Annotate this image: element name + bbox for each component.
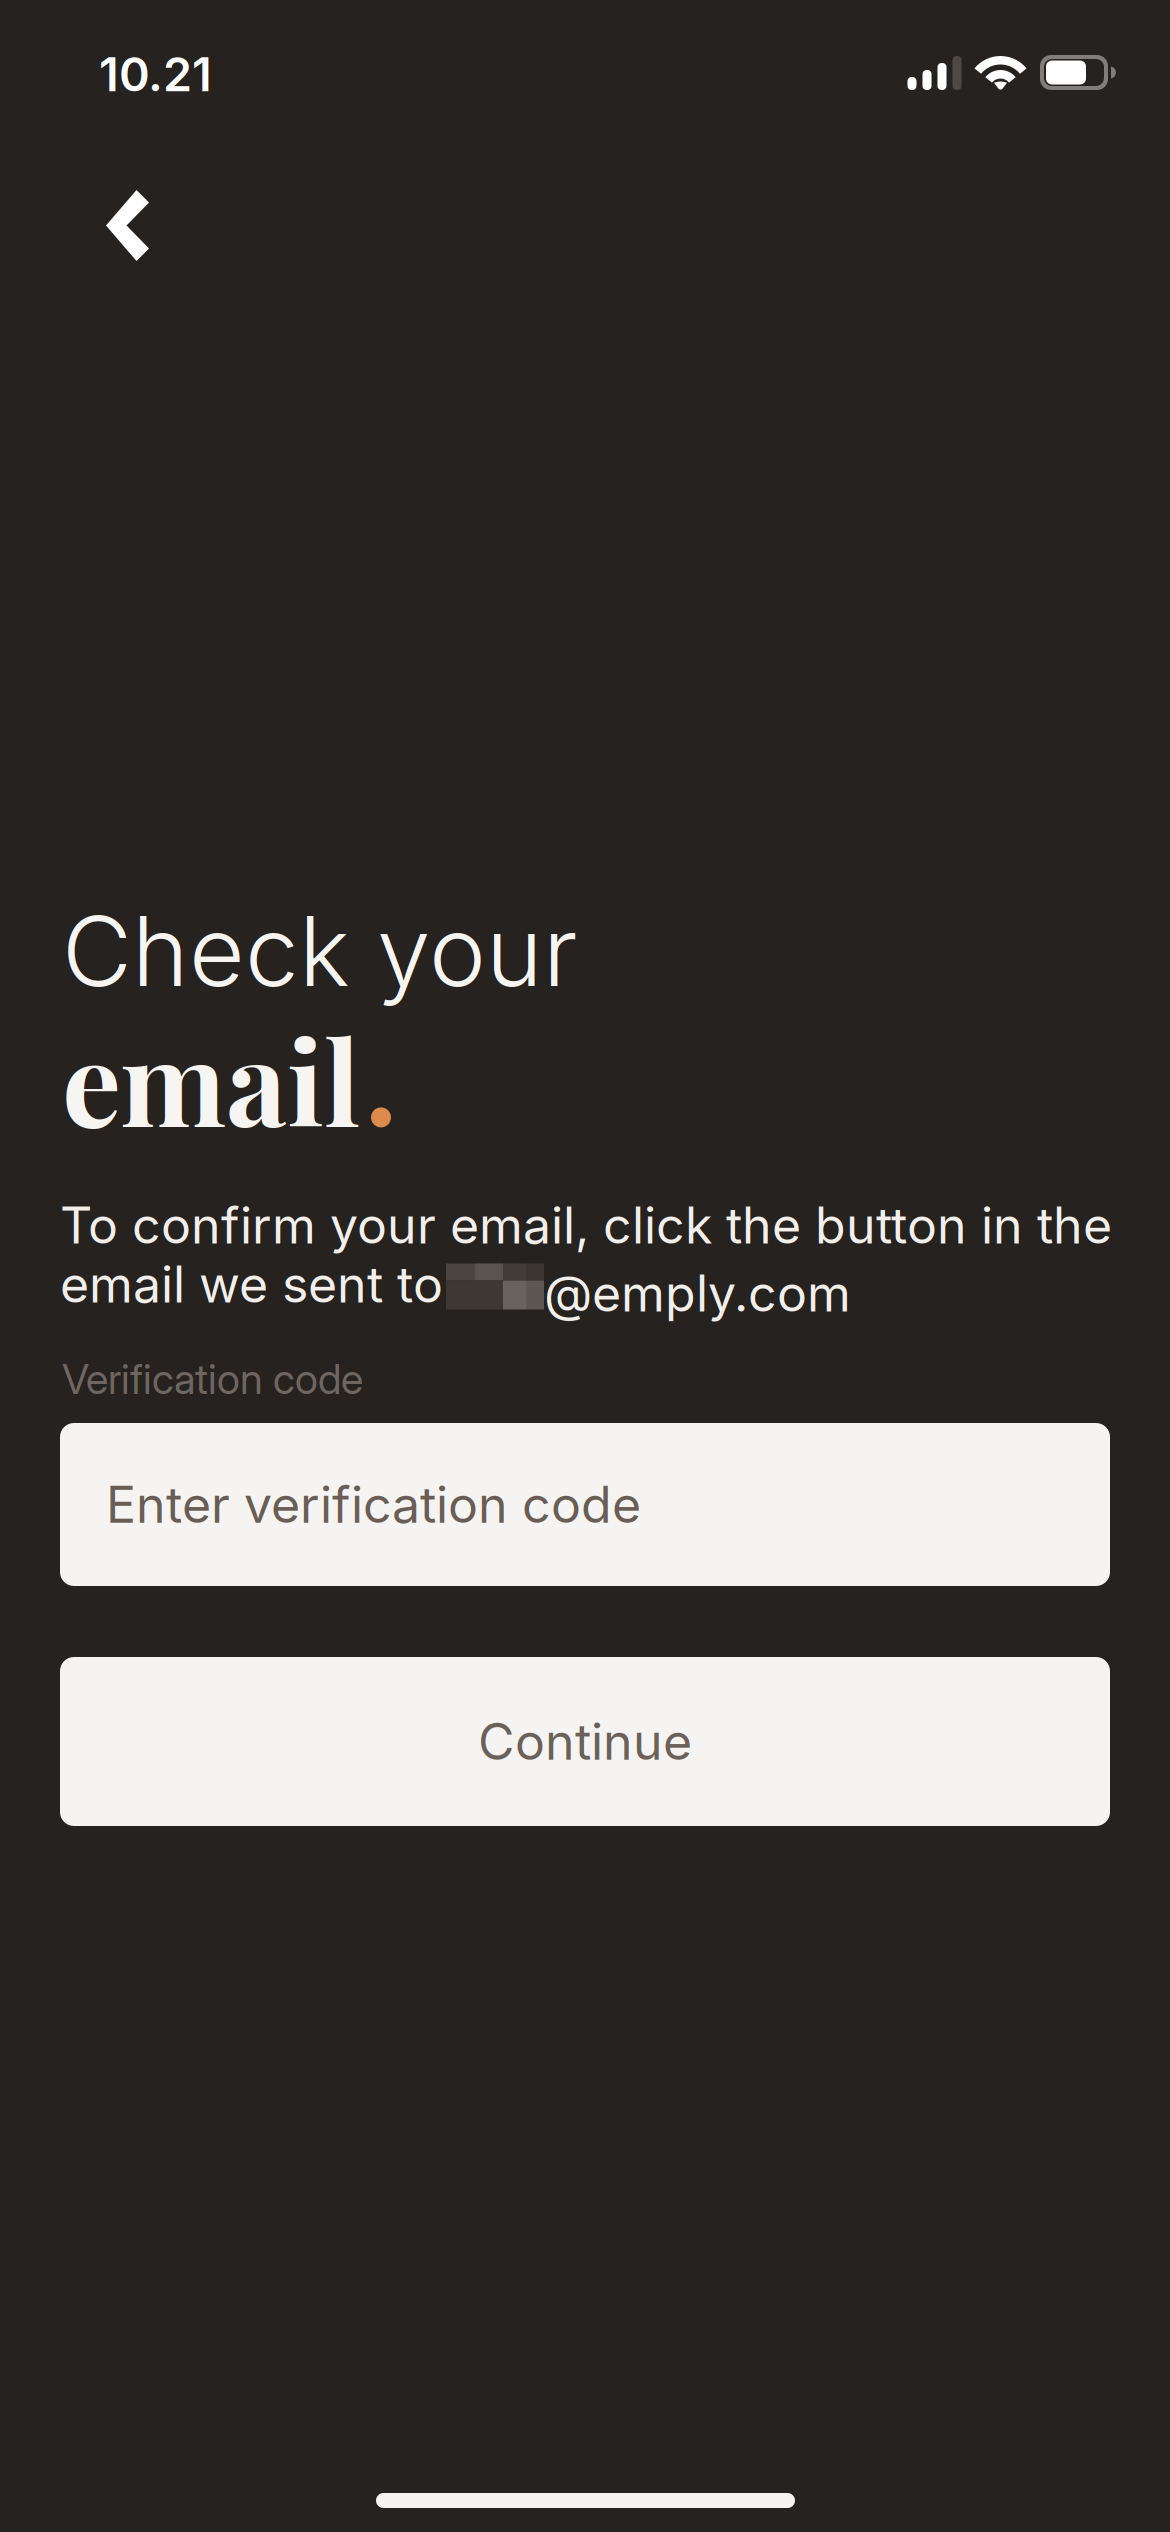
staticText: To confirm your email, click the button … bbox=[60, 1195, 1112, 1255]
staticText: Check your bbox=[62, 893, 578, 1009]
button[interactable]: Enter verification code bbox=[60, 1423, 1110, 1586]
button[interactable]: Back bbox=[62, 160, 193, 291]
staticText: 10.21 bbox=[99, 46, 212, 102]
staticText: email bbox=[62, 1000, 360, 1156]
staticText: @emply.com bbox=[544, 1263, 851, 1323]
staticText: Enter verification code bbox=[106, 1474, 641, 1535]
button[interactable]: Continue bbox=[60, 1657, 1110, 1826]
staticText: email we sent to bbox=[60, 1254, 443, 1314]
staticText: Verification code bbox=[62, 1354, 363, 1404]
staticText: Continue bbox=[478, 1711, 692, 1772]
